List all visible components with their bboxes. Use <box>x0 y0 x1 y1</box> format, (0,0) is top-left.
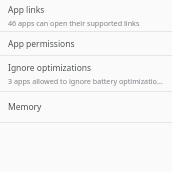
staticText: 46 apps can open their supported links <box>8 18 140 28</box>
button[interactable]: Memory <box>0 92 172 122</box>
staticText: 3 apps allowed to ignore battery optimiz… <box>8 76 164 86</box>
button[interactable]: Ignore optimizations <box>0 56 172 91</box>
staticText: Memory <box>8 101 42 113</box>
button[interactable]: App links <box>0 0 172 31</box>
staticText: Ignore optimizations <box>8 62 92 74</box>
staticText: App permissions <box>8 38 75 50</box>
staticText: App links <box>8 4 45 16</box>
button[interactable]: App permissions <box>0 32 172 55</box>
